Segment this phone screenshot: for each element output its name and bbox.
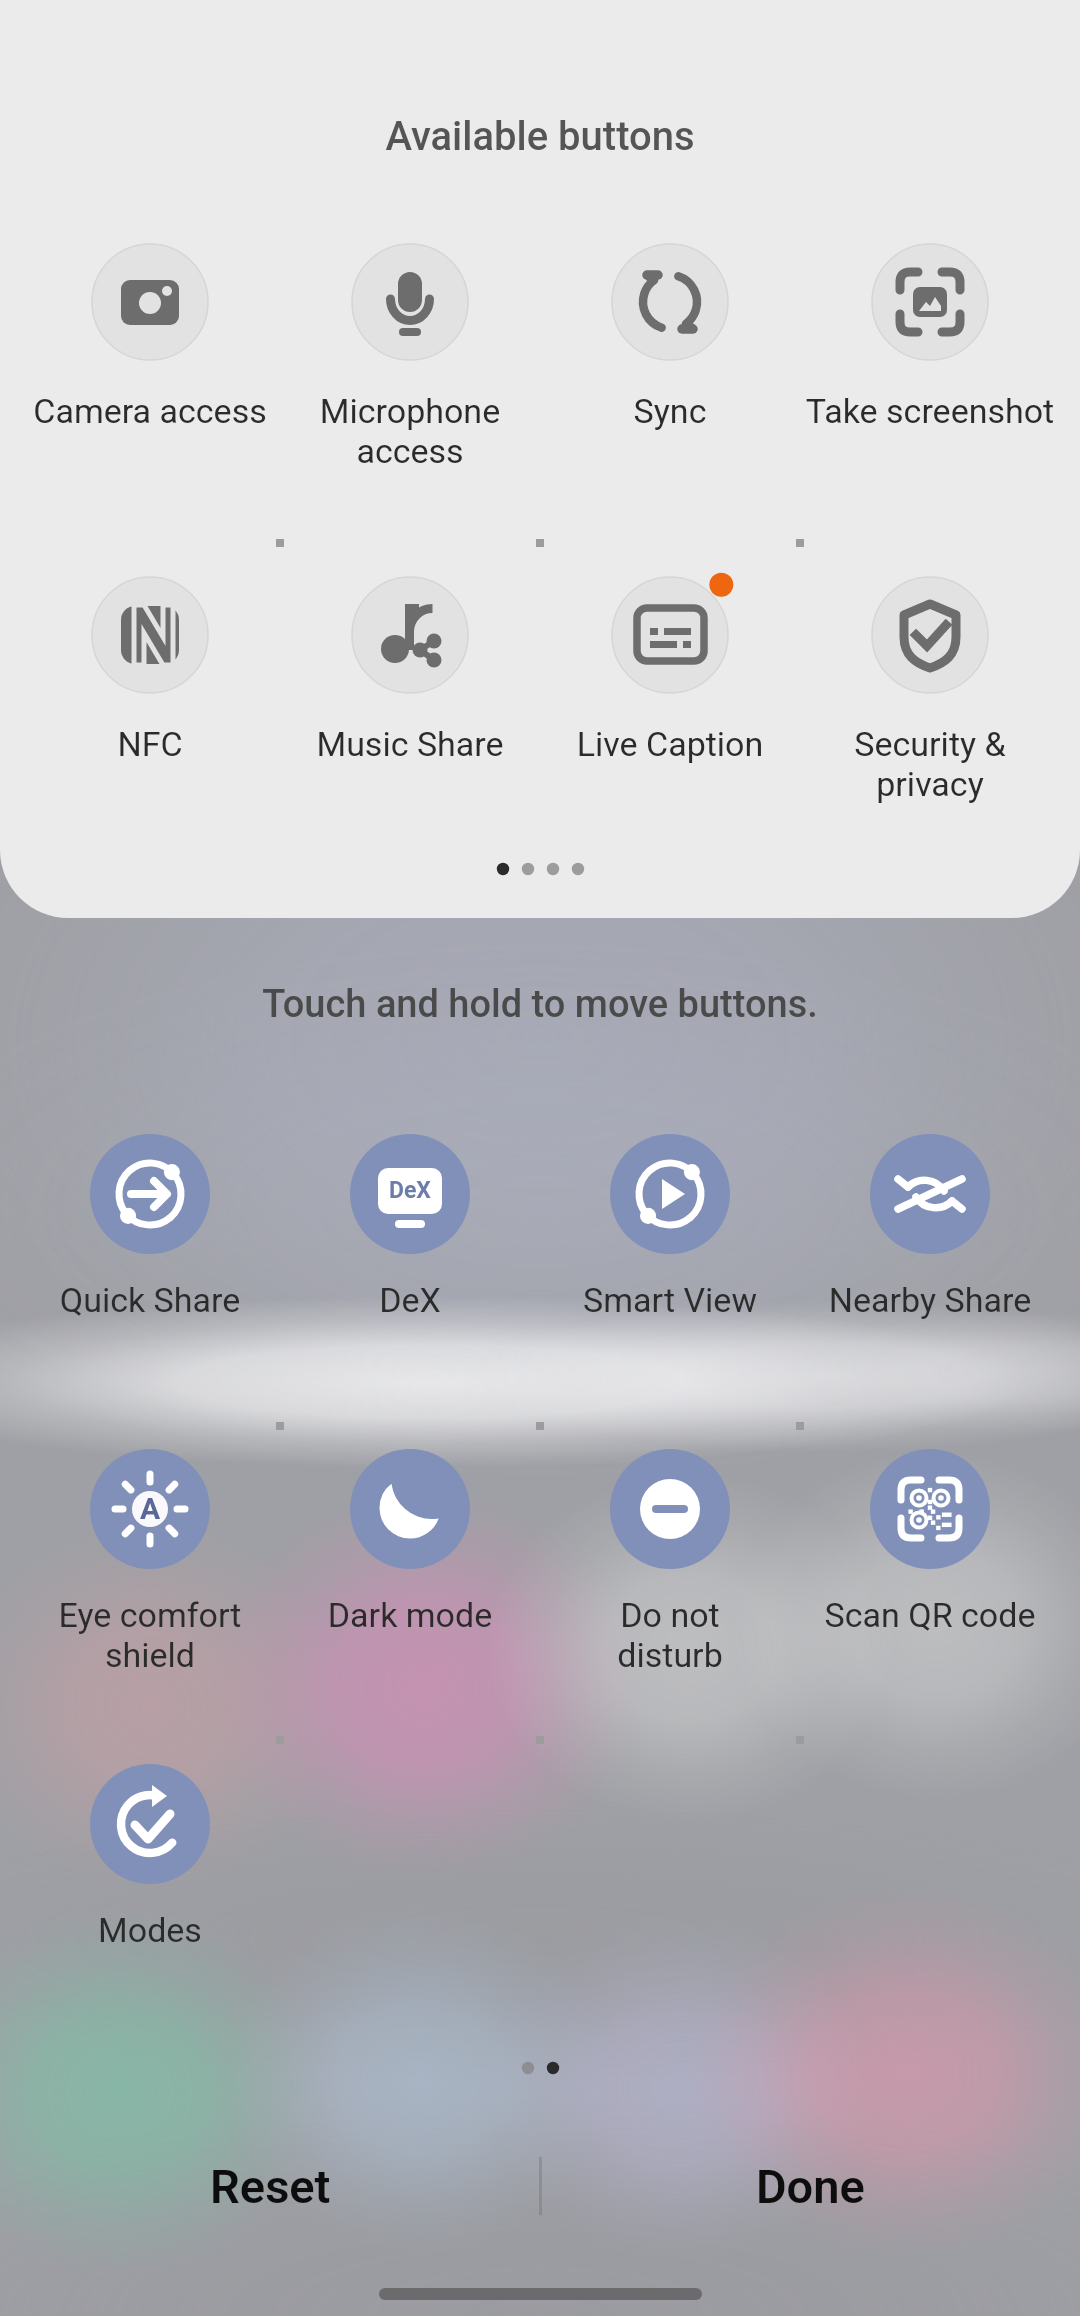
staticText: DeX — [280, 1280, 540, 1320]
button[interactable]: Done — [540, 2128, 1080, 2244]
button[interactable]: DeX — [280, 1134, 540, 1320]
staticText: Touch and hold to move buttons. — [0, 982, 1080, 1027]
staticText: Scan QR code — [800, 1595, 1060, 1635]
button[interactable]: Quick Share — [20, 1134, 280, 1320]
button[interactable]: Music Share — [280, 576, 540, 764]
button[interactable]: A — [20, 1449, 280, 1676]
staticText: Smart View — [540, 1280, 800, 1320]
staticText: Done — [756, 2159, 865, 2214]
staticText: Camera access — [20, 391, 280, 431]
staticText: Security & privacy — [800, 724, 1060, 805]
button[interactable]: Do not disturb — [540, 1449, 800, 1676]
button[interactable]: Modes — [20, 1764, 280, 1950]
staticText: Take screenshot — [800, 391, 1060, 431]
button[interactable]: Security & privacy — [800, 576, 1060, 805]
staticText: Available buttons — [0, 113, 1080, 160]
button[interactable]: Take screenshot — [800, 243, 1060, 431]
staticText: Modes — [20, 1910, 280, 1950]
button[interactable]: Scan QR code — [800, 1449, 1060, 1635]
button[interactable]: Dark mode — [280, 1449, 540, 1635]
button[interactable]: Reset — [0, 2128, 540, 2244]
button[interactable]: Sync — [540, 243, 800, 431]
button[interactable]: NFC — [20, 576, 280, 764]
staticText: Nearby Share — [800, 1280, 1060, 1320]
button[interactable]: Camera access — [20, 243, 280, 431]
staticText: Quick Share — [20, 1280, 280, 1320]
staticText: Microphone access — [280, 391, 540, 472]
staticText: Music Share — [280, 724, 540, 764]
staticText: Dark mode — [280, 1595, 540, 1635]
button[interactable]: Microphone access — [280, 243, 540, 472]
staticText: Do not disturb — [540, 1595, 800, 1676]
staticText: Sync — [540, 391, 800, 431]
staticText: A — [140, 1491, 161, 1526]
staticText: Live Caption — [540, 724, 800, 764]
button[interactable]: Smart View — [540, 1134, 800, 1320]
staticText: NFC — [20, 724, 280, 764]
staticText: DeX — [389, 1177, 431, 1204]
button[interactable]: Nearby Share — [800, 1134, 1060, 1320]
staticText: Eye comfort shield — [20, 1595, 280, 1676]
button[interactable]: Live Caption — [540, 576, 800, 764]
staticText: Reset — [210, 2159, 331, 2214]
